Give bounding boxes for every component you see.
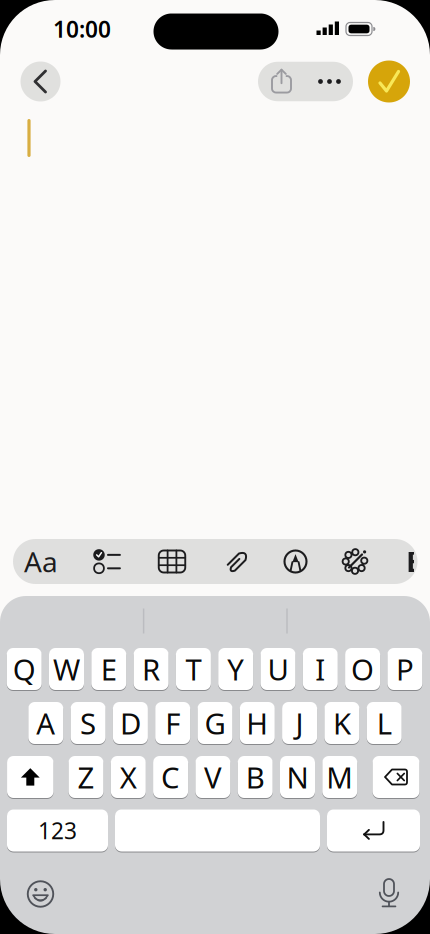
button[interactable]: Bold [406, 539, 414, 584]
staticText: 10:00 [53, 14, 111, 44]
button[interactable]: Handwriting [329, 539, 381, 584]
staticText: Q [13, 649, 36, 688]
button[interactable]: X [111, 755, 146, 798]
staticText: G [204, 703, 225, 742]
staticText: Y [227, 649, 244, 688]
button[interactable]: P [387, 647, 422, 690]
staticText: Z [77, 757, 94, 796]
staticText: B [246, 757, 265, 796]
button[interactable]: O [345, 647, 380, 690]
button[interactable]: Attach [211, 539, 263, 584]
staticText: L [377, 703, 392, 742]
staticText: M [326, 757, 353, 796]
staticText: K [333, 703, 351, 742]
staticText: I [315, 649, 325, 688]
button[interactable]: Return [327, 809, 420, 852]
staticText: B [406, 543, 425, 580]
button[interactable]: L [367, 701, 402, 744]
button[interactable]: J [282, 701, 317, 744]
staticText: A [36, 703, 55, 742]
button[interactable]: Table [146, 539, 198, 584]
button[interactable]: Format [16, 539, 66, 584]
button[interactable]: Delete [372, 755, 419, 798]
button[interactable]: Done [368, 60, 410, 102]
button[interactable]: Y [218, 647, 253, 690]
button[interactable]: More [307, 61, 351, 101]
button[interactable]: Markup [269, 539, 321, 584]
button[interactable]: Dictate [367, 873, 411, 913]
button[interactable]: 123 [7, 809, 108, 852]
button[interactable]: Q [7, 647, 42, 690]
staticText: Aa [24, 543, 58, 580]
staticText: P [396, 649, 414, 688]
staticText: H [246, 703, 268, 742]
button[interactable]: Shift [7, 755, 54, 798]
staticText: S [80, 703, 96, 742]
button[interactable]: N [280, 755, 315, 798]
staticText: E [101, 649, 117, 688]
button[interactable]: S [71, 701, 106, 744]
button[interactable]: Share [258, 61, 304, 101]
button[interactable]: C [153, 755, 188, 798]
button[interactable]: M [322, 755, 357, 798]
button[interactable]: R [134, 647, 169, 690]
button[interactable]: W [49, 647, 84, 690]
button[interactable]: Emoji [18, 874, 62, 914]
staticText: 123 [38, 815, 77, 845]
staticText: D [120, 703, 141, 742]
button[interactable]: I [303, 647, 338, 690]
button[interactable]: V [195, 755, 230, 798]
button[interactable]: K [324, 701, 359, 744]
staticText: W [53, 649, 80, 688]
staticText: X [120, 757, 137, 796]
button[interactable]: E [91, 647, 126, 690]
button[interactable]: G [197, 701, 232, 744]
button[interactable]: D [113, 701, 148, 744]
staticText: U [267, 649, 288, 688]
button[interactable]: H [240, 701, 275, 744]
staticText: O [351, 649, 374, 688]
button[interactable]: B [238, 755, 273, 798]
staticText: J [296, 703, 304, 742]
staticText: V [204, 757, 222, 796]
button[interactable]: Z [68, 755, 103, 798]
staticText: T [185, 649, 201, 688]
button[interactable]: T [176, 647, 211, 690]
staticText: C [161, 757, 180, 796]
button[interactable]: U [260, 647, 295, 690]
staticText: N [286, 757, 308, 796]
staticText: F [165, 703, 180, 742]
button[interactable]: Checklist [80, 539, 132, 584]
button[interactable]: Space [115, 809, 320, 852]
button[interactable]: A [28, 701, 63, 744]
button[interactable]: F [155, 701, 190, 744]
button[interactable]: Back [20, 61, 60, 101]
staticText: R [142, 649, 160, 688]
